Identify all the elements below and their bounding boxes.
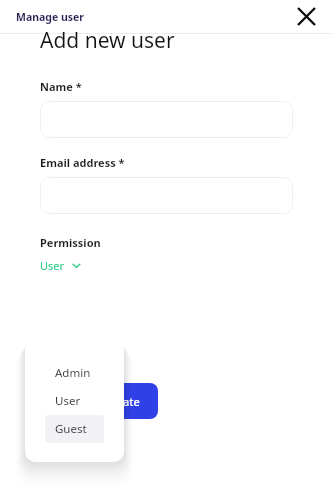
button[interactable]: User bbox=[40, 258, 81, 273]
button[interactable]: Admin bbox=[45, 359, 104, 387]
staticText: Name * bbox=[40, 79, 82, 94]
button[interactable] bbox=[40, 177, 293, 214]
button[interactable]: Guest bbox=[45, 415, 104, 443]
button[interactable] bbox=[40, 101, 293, 138]
button[interactable]: Create bbox=[86, 383, 158, 419]
staticText: Admin bbox=[55, 365, 91, 381]
staticText: Manage user bbox=[16, 10, 84, 24]
staticText: Guest bbox=[55, 421, 87, 437]
staticText: User bbox=[55, 393, 81, 409]
staticText: Create bbox=[105, 394, 140, 409]
button[interactable]: User bbox=[45, 387, 104, 415]
staticText: Permission bbox=[40, 235, 101, 250]
staticText: Add new user bbox=[40, 26, 175, 55]
staticText: User bbox=[40, 258, 65, 273]
button[interactable]: Close bbox=[289, 0, 323, 33]
staticText: Email address * bbox=[40, 155, 125, 170]
